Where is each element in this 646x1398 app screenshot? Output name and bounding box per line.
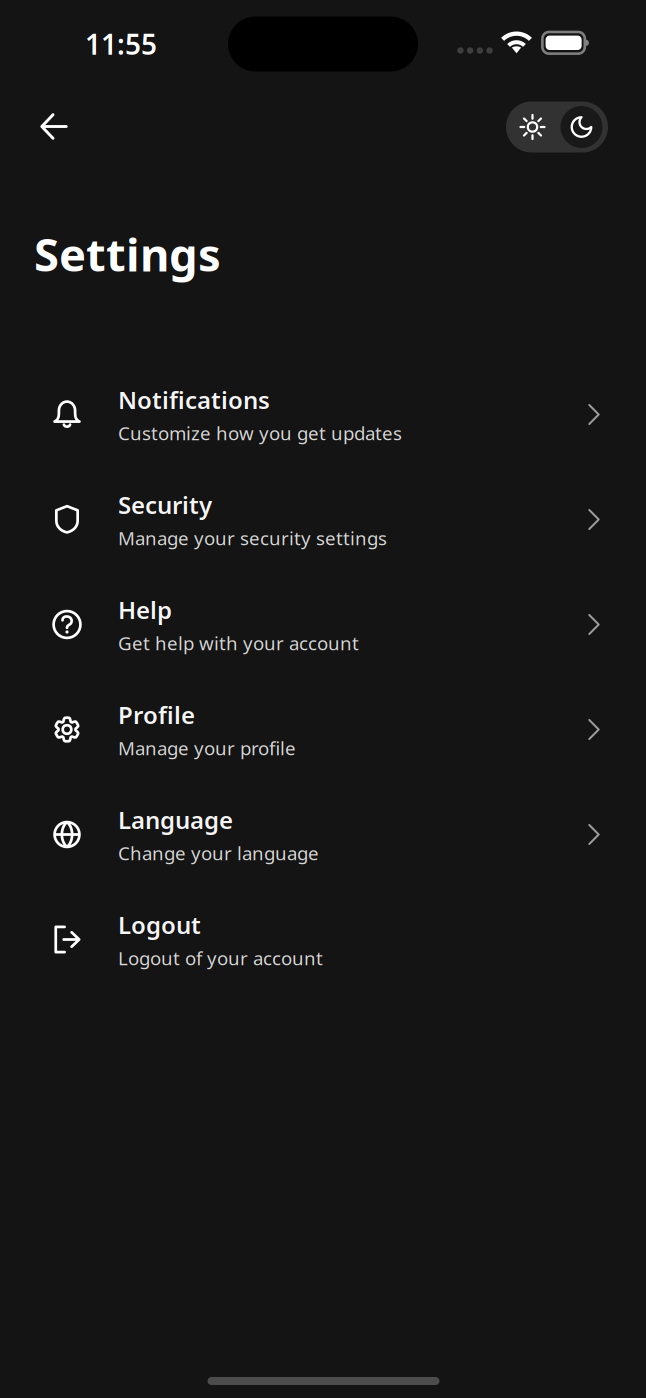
button[interactable]: Notifications bbox=[0, 362, 646, 467]
button[interactable]: Back bbox=[26, 99, 82, 155]
staticText: Change your language bbox=[118, 840, 319, 865]
button[interactable]: Logout bbox=[0, 887, 646, 992]
staticText: Customize how you get updates bbox=[118, 420, 402, 445]
staticText: Profile bbox=[118, 699, 195, 731]
button[interactable]: Profile bbox=[0, 677, 646, 782]
staticText: Help bbox=[118, 594, 172, 626]
staticText: Logout bbox=[118, 909, 201, 941]
button[interactable]: Security bbox=[0, 467, 646, 572]
staticText: Manage your profile bbox=[118, 735, 296, 760]
button[interactable]: Help bbox=[0, 572, 646, 677]
staticText: Logout of your account bbox=[118, 945, 323, 970]
staticText: Settings bbox=[34, 224, 221, 284]
staticText: Get help with your account bbox=[118, 630, 359, 655]
button[interactable]: Toggle appearance bbox=[506, 101, 608, 152]
staticText: Security bbox=[118, 489, 212, 521]
staticText: Manage your security settings bbox=[118, 525, 387, 550]
staticText: Language bbox=[118, 804, 233, 836]
button[interactable]: Language bbox=[0, 782, 646, 887]
staticText: Notifications bbox=[118, 384, 270, 416]
staticText: 11:55 bbox=[85, 25, 157, 63]
